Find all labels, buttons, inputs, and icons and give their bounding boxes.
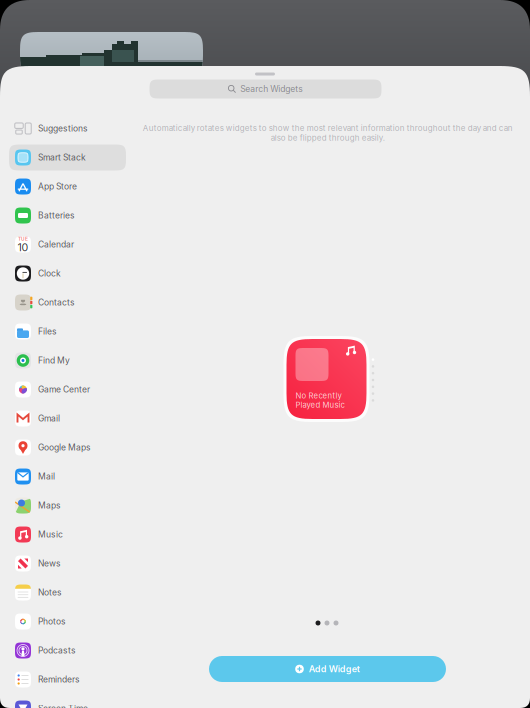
button[interactable]: Clock xyxy=(9,260,126,286)
staticText: Add Widget xyxy=(309,663,360,674)
button[interactable]: App Store xyxy=(9,173,126,199)
button[interactable]: Files xyxy=(9,318,126,344)
button[interactable]: Suggestions xyxy=(9,115,126,141)
button[interactable]: Screen Time xyxy=(9,695,126,708)
button[interactable]: Google Maps xyxy=(9,434,126,460)
button[interactable]: Notes xyxy=(9,579,126,605)
staticText: Automatically rotates widgets to show th… xyxy=(142,123,512,143)
staticText: No Recently Played Music xyxy=(295,391,344,410)
staticText: Suggestions xyxy=(38,123,88,134)
button[interactable]: Smart Stack xyxy=(9,144,126,170)
button[interactable]: News xyxy=(9,550,126,576)
staticText: Podcasts xyxy=(38,645,76,656)
button[interactable]: Search Widgets xyxy=(149,79,381,98)
staticText: Screen Time xyxy=(38,703,88,708)
staticText: App Store xyxy=(38,181,77,192)
button[interactable]: TUE xyxy=(9,231,126,257)
staticText: News xyxy=(38,558,61,569)
staticText: Contacts xyxy=(38,297,75,308)
staticText: Clock xyxy=(38,268,61,279)
staticText: Gmail xyxy=(38,413,60,424)
button[interactable]: Game Center xyxy=(9,376,126,402)
staticText: Smart Stack xyxy=(38,152,86,163)
staticText: Reminders xyxy=(38,674,80,685)
staticText: Files xyxy=(38,326,57,337)
staticText: Search Widgets xyxy=(240,84,303,94)
staticText: Mail xyxy=(38,471,55,482)
staticText: Calendar xyxy=(38,239,74,250)
staticText: Music xyxy=(38,529,63,540)
button[interactable]: Reminders xyxy=(9,666,126,692)
staticText: Maps xyxy=(38,500,61,511)
button[interactable]: Gmail xyxy=(9,405,126,431)
staticText: Find My xyxy=(38,355,70,366)
staticText: Google Maps xyxy=(38,442,91,453)
staticText: 10 xyxy=(17,241,28,254)
staticText: Batteries xyxy=(38,210,75,221)
staticText: Game Center xyxy=(38,384,90,395)
button[interactable]: Photos xyxy=(9,608,126,634)
button[interactable]: Find My xyxy=(9,347,126,373)
button[interactable]: Contacts xyxy=(9,289,126,315)
staticText: Notes xyxy=(38,587,62,598)
button[interactable]: Batteries xyxy=(9,202,126,228)
button[interactable]: Mail xyxy=(9,463,126,489)
button[interactable]: Music xyxy=(9,521,126,547)
button[interactable]: Podcasts xyxy=(9,637,126,663)
button[interactable]: Add Widget xyxy=(209,656,446,682)
staticText: Photos xyxy=(38,616,66,627)
button[interactable]: Maps xyxy=(9,492,126,518)
staticText: TUE xyxy=(18,236,28,242)
